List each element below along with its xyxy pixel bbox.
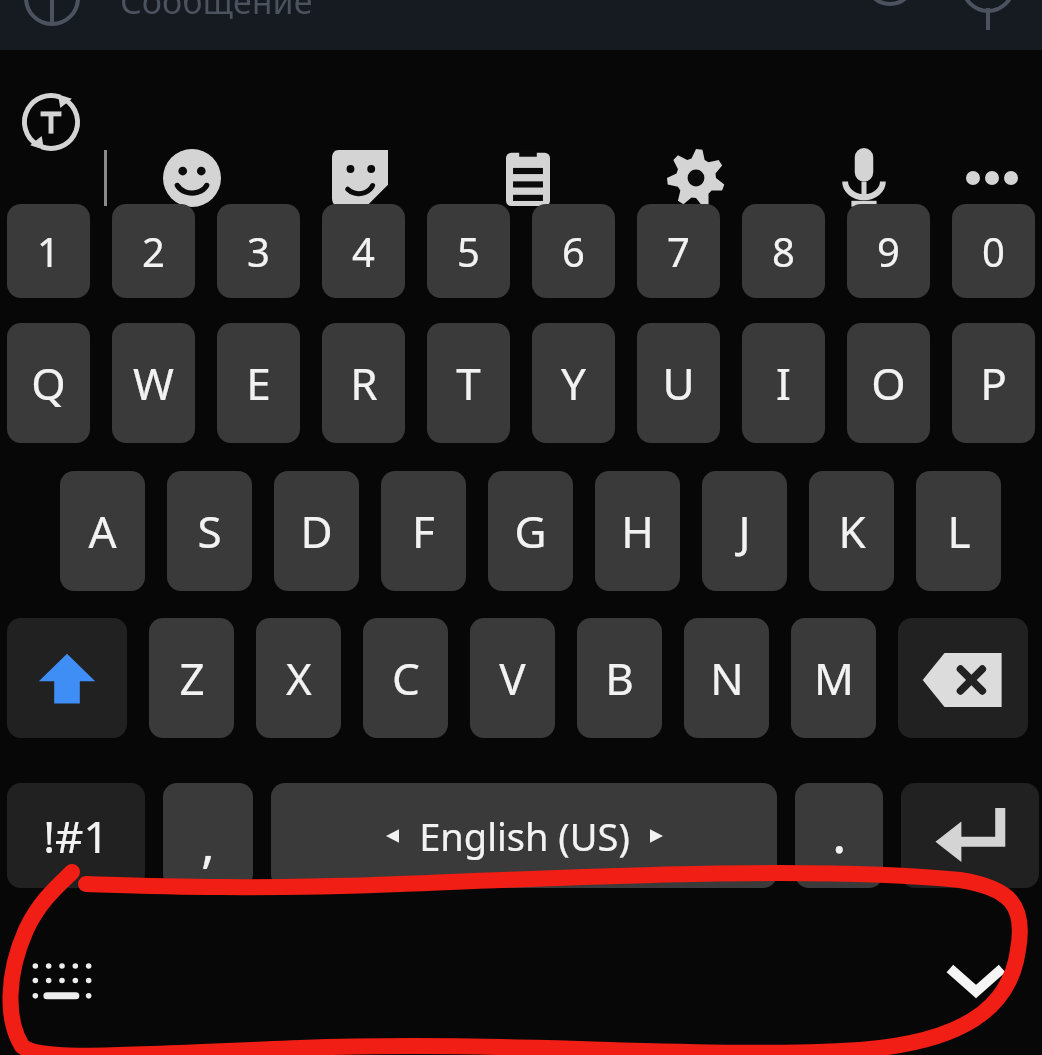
staticText: Y [561, 353, 586, 413]
button[interactable]: Emoji [148, 134, 236, 222]
button[interactable]: I [742, 323, 825, 443]
staticText: 8 [772, 224, 795, 278]
staticText: 3 [247, 224, 270, 278]
button[interactable]: Q [7, 323, 90, 443]
button[interactable]: Enter [901, 783, 1039, 888]
button[interactable]: 7 [637, 204, 720, 298]
button[interactable]: . [795, 783, 883, 888]
button[interactable]: Space, English (US) [271, 783, 777, 888]
staticText: G [514, 501, 547, 561]
staticText: Q [31, 353, 66, 413]
button[interactable]: Settings [652, 134, 740, 222]
button[interactable]: 1 [7, 204, 90, 298]
button[interactable]: A [60, 471, 145, 591]
staticText: D [300, 501, 333, 561]
button[interactable]: Stickers [316, 134, 404, 222]
button[interactable]: G [488, 471, 573, 591]
staticText: . [832, 795, 847, 869]
button[interactable]: 6 [532, 204, 615, 298]
staticText: X [286, 648, 312, 708]
staticText: U [662, 353, 695, 413]
staticText: I [776, 353, 791, 413]
staticText: M [814, 648, 854, 708]
staticText: C [392, 648, 420, 708]
button[interactable]: 9 [847, 204, 930, 298]
staticText: 7 [667, 224, 690, 278]
button[interactable]: !#1 [7, 783, 145, 888]
staticText: , [201, 806, 215, 877]
button[interactable]: 0 [952, 204, 1035, 298]
button[interactable]: S [167, 471, 252, 591]
staticText: W [133, 353, 174, 413]
button[interactable]: K [809, 471, 894, 591]
staticText: E [246, 353, 271, 413]
staticText: A [88, 501, 117, 561]
button[interactable]: Shift [7, 618, 127, 738]
button[interactable]: Z [149, 618, 234, 738]
staticText: 9 [877, 224, 900, 278]
staticText: L [947, 501, 971, 561]
staticText: Z [179, 648, 205, 708]
button[interactable]: Switch keyboard [16, 947, 108, 1013]
button[interactable]: Translate [7, 78, 95, 166]
button[interactable]: 4 [322, 204, 405, 298]
staticText: 0 [982, 224, 1005, 278]
staticText: !#1 [43, 806, 109, 866]
button[interactable]: Hide keyboard [930, 947, 1022, 1013]
button[interactable]: 8 [742, 204, 825, 298]
button[interactable]: W [112, 323, 195, 443]
button[interactable]: F [381, 471, 466, 591]
button[interactable]: E [217, 323, 300, 443]
button[interactable]: N [684, 618, 769, 738]
button[interactable]: V [470, 618, 555, 738]
button[interactable]: O [847, 323, 930, 443]
button[interactable]: B [577, 618, 662, 738]
button[interactable]: J [702, 471, 787, 591]
staticText: O [871, 353, 906, 413]
staticText: 5 [457, 224, 480, 278]
button[interactable]: C [363, 618, 448, 738]
button[interactable]: Clipboard [484, 134, 572, 222]
button[interactable]: Backspace [898, 618, 1028, 738]
button[interactable]: M [791, 618, 876, 738]
staticText: B [605, 648, 634, 708]
staticText: P [980, 353, 1007, 413]
button[interactable]: D [274, 471, 359, 591]
button[interactable]: Y [532, 323, 615, 443]
button[interactable]: U [637, 323, 720, 443]
staticText: H [621, 501, 654, 561]
button[interactable]: 3 [217, 204, 300, 298]
staticText: English (US) [419, 810, 630, 862]
button[interactable]: X [256, 618, 341, 738]
staticText: N [710, 648, 744, 708]
button[interactable]: P [952, 323, 1035, 443]
staticText: S [197, 501, 222, 561]
staticText: V [499, 648, 526, 708]
staticText: J [738, 501, 751, 561]
button[interactable]: L [916, 471, 1001, 591]
button[interactable]: 5 [427, 204, 510, 298]
button[interactable]: 2 [112, 204, 195, 298]
button[interactable]: T [427, 323, 510, 443]
staticText: T [456, 353, 481, 413]
staticText: R [350, 353, 378, 413]
staticText: 4 [352, 224, 375, 278]
staticText: Сообщение [120, 0, 313, 24]
button[interactable]: , [163, 783, 253, 888]
button[interactable]: More options [948, 134, 1036, 222]
button[interactable]: Voice input [820, 134, 908, 222]
staticText: 6 [562, 224, 585, 278]
button[interactable]: H [595, 471, 680, 591]
button[interactable]: R [322, 323, 405, 443]
staticText: 1 [37, 224, 60, 278]
staticText: K [838, 501, 866, 561]
staticText: F [412, 501, 435, 561]
staticText: 2 [142, 224, 165, 278]
